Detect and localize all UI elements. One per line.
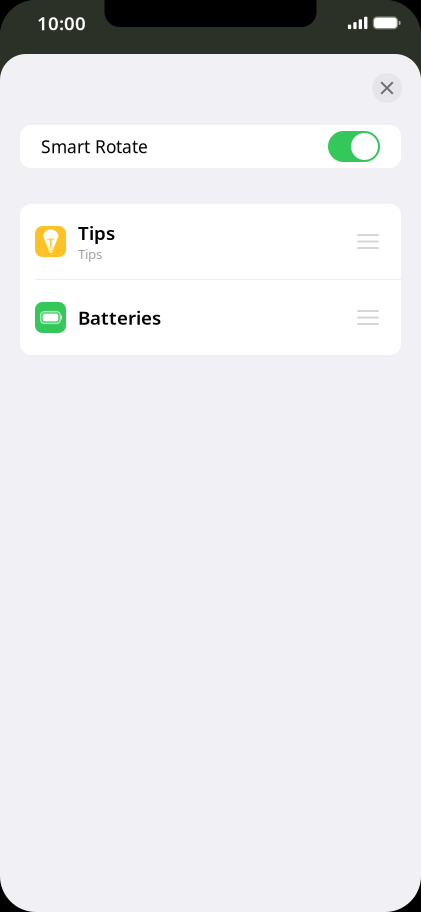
staticText: Tips [78,220,115,245]
staticText: Batteries [78,305,161,330]
staticText: Tips [78,245,102,263]
button[interactable]: Smart Rotate toggle [328,131,380,162]
button[interactable]: Batteries [20,280,401,355]
staticText: 10:00 [37,10,86,35]
button[interactable]: Close [372,73,402,103]
staticText: Smart Rotate [41,135,148,158]
button[interactable]: Tips [20,204,401,279]
button[interactable]: Smart Rotate [20,125,401,168]
